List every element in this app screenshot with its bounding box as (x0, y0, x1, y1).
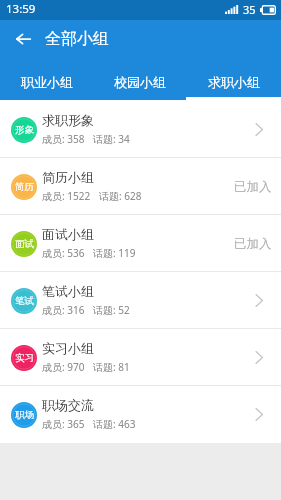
button[interactable]: 笔试 (0, 272, 281, 329)
staticText: 职业小组 (21, 74, 73, 90)
staticText: 求职形象 (42, 112, 94, 128)
staticText: 笔试 (15, 295, 34, 307)
staticText: 成员: 358 (42, 132, 85, 146)
staticText: 实习小组 (42, 340, 94, 356)
staticText: 全部小组 (45, 29, 109, 49)
staticText: 面试 (15, 238, 34, 250)
button[interactable]: 实习 (0, 329, 281, 386)
staticText: 话题: 81 (93, 360, 130, 374)
button[interactable]: 面试 (0, 215, 281, 272)
staticText: 话题: 34 (93, 132, 130, 146)
staticText: 35 (243, 2, 256, 17)
staticText: 已加入 (234, 179, 272, 195)
staticText: 笔试小组 (42, 283, 94, 299)
staticText: 简历 (15, 181, 34, 193)
staticText: 成员: 536 (42, 246, 85, 260)
staticText: 简历小组 (42, 169, 94, 185)
staticText: 话题: 119 (93, 246, 136, 260)
staticText: 话题: 628 (99, 189, 142, 203)
button[interactable]: Back (0, 20, 39, 58)
button[interactable]: 求职小组 (187, 58, 281, 100)
staticText: 成员: 365 (42, 417, 85, 431)
button[interactable]: 形象 (0, 101, 281, 158)
staticText: 话题: 463 (93, 417, 136, 431)
button[interactable]: 校园小组 (93, 58, 187, 100)
staticText: 成员: 970 (42, 360, 85, 374)
staticText: 实习 (15, 352, 34, 364)
staticText: 已加入 (234, 236, 272, 252)
staticText: 职场 (15, 409, 34, 421)
button[interactable]: 职业小组 (0, 58, 93, 100)
staticText: 话题: 52 (93, 303, 130, 317)
button[interactable]: 职场 (0, 386, 281, 443)
button[interactable]: 简历 (0, 158, 281, 215)
staticText: 面试小组 (42, 226, 94, 242)
staticText: 成员: 316 (42, 303, 85, 317)
staticText: 求职小组 (208, 74, 260, 90)
staticText: 形象 (15, 124, 34, 136)
staticText: 成员: 1522 (42, 189, 91, 203)
staticText: 校园小组 (114, 74, 166, 90)
staticText: 13:59 (6, 1, 36, 17)
staticText: 职场交流 (42, 397, 94, 413)
